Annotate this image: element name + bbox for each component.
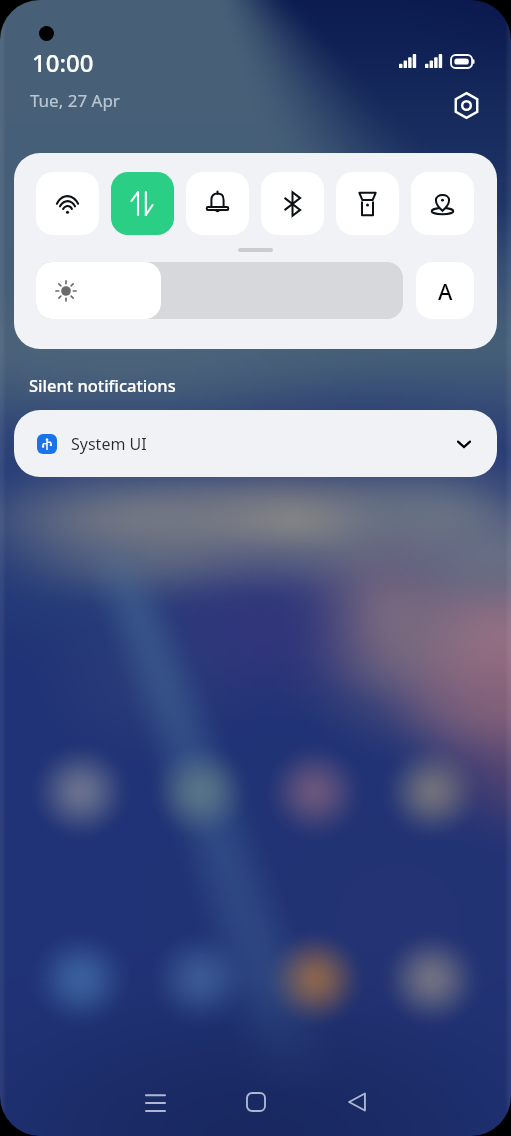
button[interactable]: Settings — [450, 89, 482, 121]
button[interactable]: Bluetooth — [261, 172, 324, 235]
button[interactable]: Home — [205, 1077, 306, 1127]
button[interactable]: Flashlight — [336, 172, 399, 235]
button[interactable]: Back — [306, 1077, 407, 1127]
button[interactable]: A — [416, 262, 474, 319]
button[interactable]: Wi-Fi — [36, 172, 99, 235]
button[interactable]: Location — [411, 172, 474, 235]
staticText: System UI — [71, 433, 147, 455]
button[interactable]: System UI — [14, 410, 497, 477]
button[interactable]: Recent apps — [105, 1077, 205, 1127]
button[interactable]: Mobile data — [111, 172, 174, 235]
staticText: 10:00 — [32, 46, 94, 79]
staticText: A — [438, 276, 453, 306]
button[interactable]: Brightness — [36, 262, 403, 319]
staticText: Tue, 27 Apr — [30, 89, 120, 112]
staticText: Silent notifications — [29, 374, 176, 396]
button[interactable]: Ring mode — [186, 172, 249, 235]
